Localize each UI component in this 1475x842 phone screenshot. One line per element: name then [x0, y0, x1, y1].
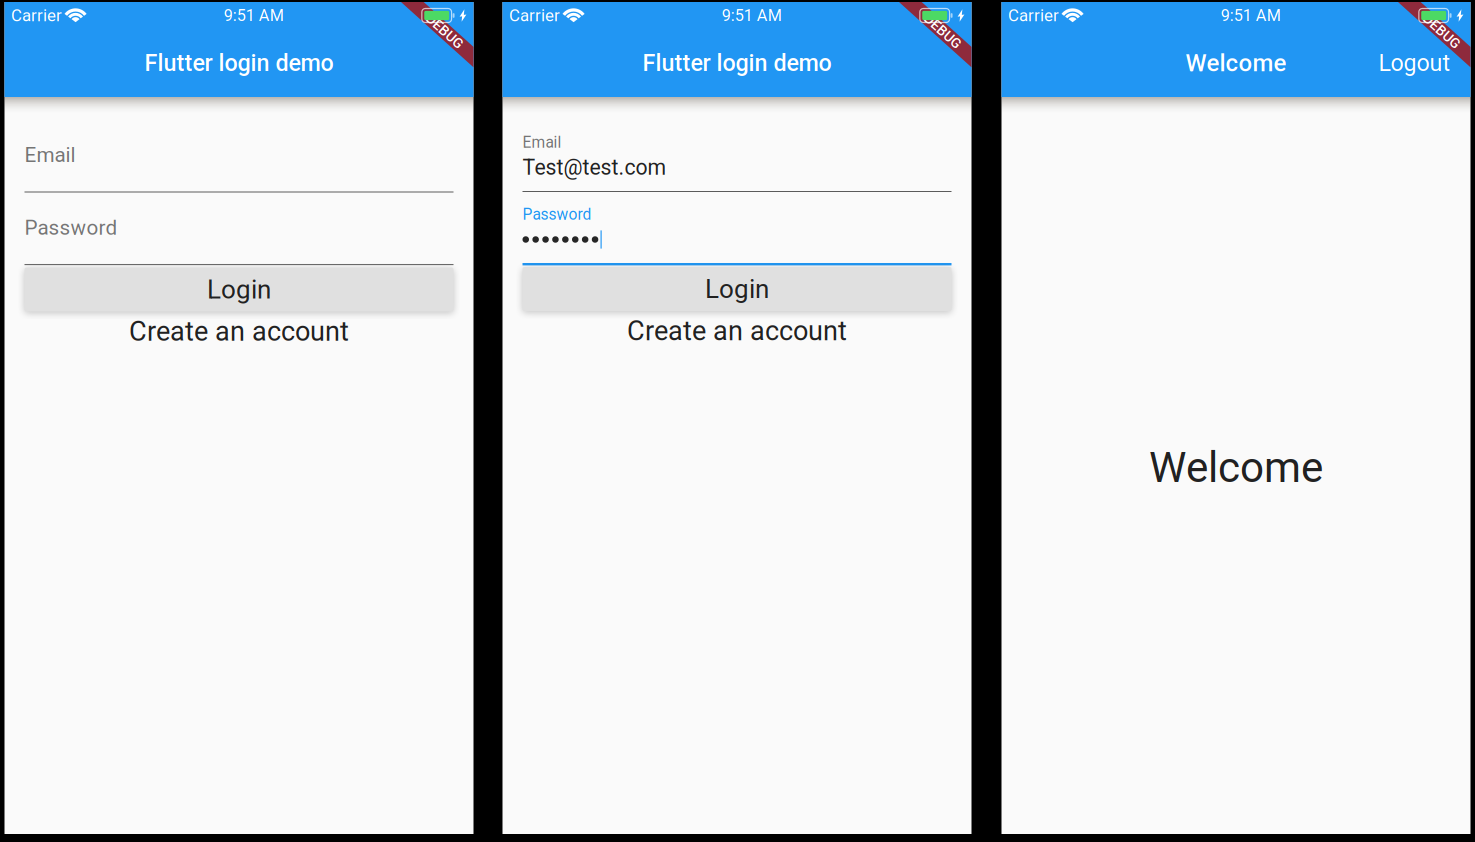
staticText: Carrier — [509, 6, 560, 25]
staticText: Password — [522, 205, 591, 224]
staticText: 9:51 AM — [1221, 6, 1281, 25]
staticText: 9:51 AM — [722, 6, 782, 25]
staticText: Login — [207, 274, 271, 305]
button[interactable]: Login — [24, 267, 453, 311]
staticText: Carrier — [1008, 6, 1059, 25]
staticText: Password — [24, 215, 117, 240]
staticText: Create an account — [627, 315, 847, 347]
staticText: Carrier — [11, 6, 62, 25]
staticText: Test@test.com — [522, 155, 666, 180]
staticText: Email — [522, 133, 561, 152]
staticText: DEBUG — [920, 23, 964, 39]
button[interactable]: Create an account — [24, 314, 453, 348]
staticText: Welcome — [1149, 443, 1323, 492]
staticText: 9:51 AM — [224, 6, 284, 25]
staticText: Logout — [1378, 49, 1450, 77]
staticText: Flutter login demo — [144, 49, 333, 77]
staticText: DEBUG — [422, 23, 466, 39]
button[interactable]: Create an account — [522, 314, 951, 348]
button[interactable]: Logout — [1372, 35, 1456, 91]
staticText: Create an account — [129, 316, 349, 347]
staticText: Email — [24, 143, 75, 167]
staticText: Flutter login demo — [642, 49, 831, 77]
staticText: Login — [705, 274, 769, 304]
staticText: Welcome — [1185, 49, 1286, 77]
staticText: DEBUG — [1419, 23, 1463, 39]
button[interactable]: Login — [522, 267, 951, 311]
